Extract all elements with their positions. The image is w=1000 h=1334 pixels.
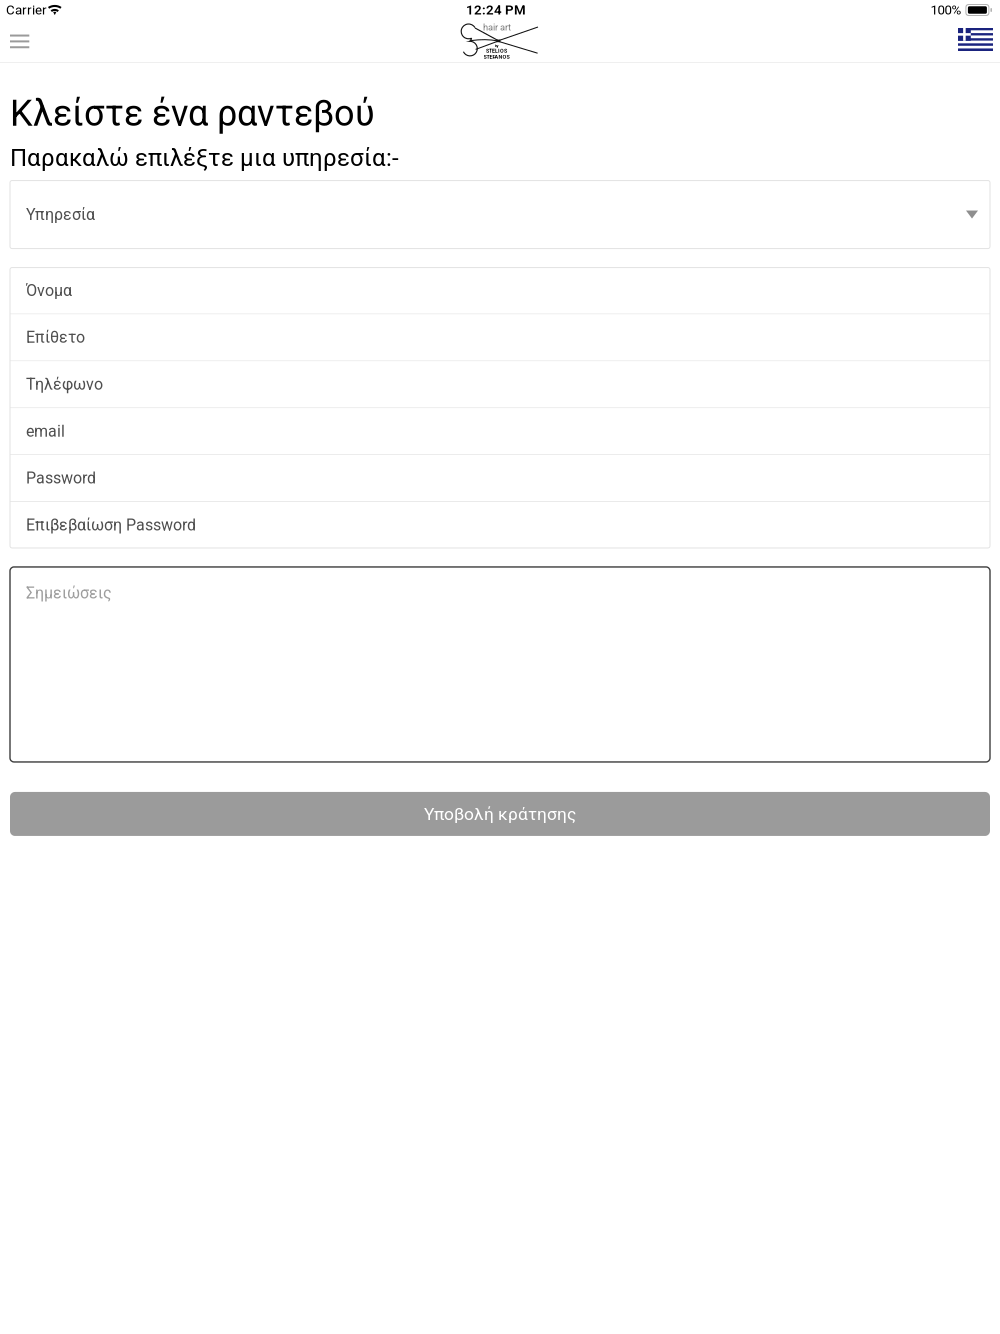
button[interactable]: Password bbox=[10, 455, 990, 501]
staticText: Σημειώσεις bbox=[26, 584, 112, 602]
button[interactable]: email bbox=[10, 408, 990, 454]
staticText: Υπηρεσία bbox=[26, 205, 95, 224]
staticText: Παρακαλώ επιλέξτε μια υπηρεσία:- bbox=[10, 144, 399, 171]
staticText: 100% bbox=[930, 2, 961, 18]
staticText: Τηλέφωνο bbox=[26, 375, 103, 393]
staticText: Επιβεβαίωση Password bbox=[26, 516, 196, 534]
button[interactable]: Menu bbox=[0, 20, 41, 62]
staticText: email bbox=[26, 422, 65, 440]
button[interactable]: Επιβεβαίωση Password bbox=[10, 502, 990, 548]
button[interactable]: Change language bbox=[946, 20, 1000, 62]
button[interactable]: Επίθετο bbox=[10, 314, 990, 360]
button[interactable]: Υποβολή κράτησης bbox=[10, 792, 990, 836]
staticText: Κλείστε ένα ραντεβού bbox=[10, 93, 375, 134]
staticText: 12:24 PM bbox=[466, 2, 526, 18]
button[interactable]: Όνομα bbox=[10, 268, 990, 313]
button[interactable]: Τηλέφωνο bbox=[10, 361, 990, 407]
staticText: STEFANOS bbox=[483, 54, 509, 60]
staticText: STELIOS bbox=[486, 48, 507, 54]
staticText: Όνομα bbox=[26, 281, 72, 300]
staticText: Επίθετο bbox=[26, 328, 85, 347]
staticText: by bbox=[494, 43, 498, 48]
button[interactable]: Σημειώσεις bbox=[10, 567, 990, 762]
staticText: hair art bbox=[483, 22, 511, 33]
button[interactable]: Υπηρεσία bbox=[10, 181, 990, 249]
staticText: Password bbox=[26, 469, 96, 487]
staticText: Carrier bbox=[6, 2, 47, 18]
staticText: Υποβολή κράτησης bbox=[424, 804, 576, 824]
